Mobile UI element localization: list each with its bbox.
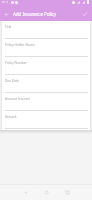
button[interactable]: Due Date: [2, 75, 90, 93]
staticText: Policy Number: [5, 61, 27, 65]
staticText: Add Insurance Policy: [13, 11, 56, 17]
button[interactable]: Remark: [2, 111, 90, 129]
button[interactable]: Title: [2, 21, 90, 39]
button[interactable]: Save: [78, 7, 92, 21]
button[interactable]: Policy Number: [2, 57, 90, 75]
button[interactable]: Amount Insured: [2, 93, 90, 111]
button[interactable]: Back: [0, 7, 13, 21]
button[interactable]: Recents: [57, 185, 78, 200]
staticText: Title: [5, 25, 12, 29]
button[interactable]: Policy Holder Name: [2, 39, 90, 57]
staticText: Due Date: [5, 79, 19, 83]
staticText: Policy Holder Name: [5, 43, 35, 47]
staticText: Amount Insured: [5, 97, 30, 101]
staticText: Remark: [5, 115, 17, 119]
